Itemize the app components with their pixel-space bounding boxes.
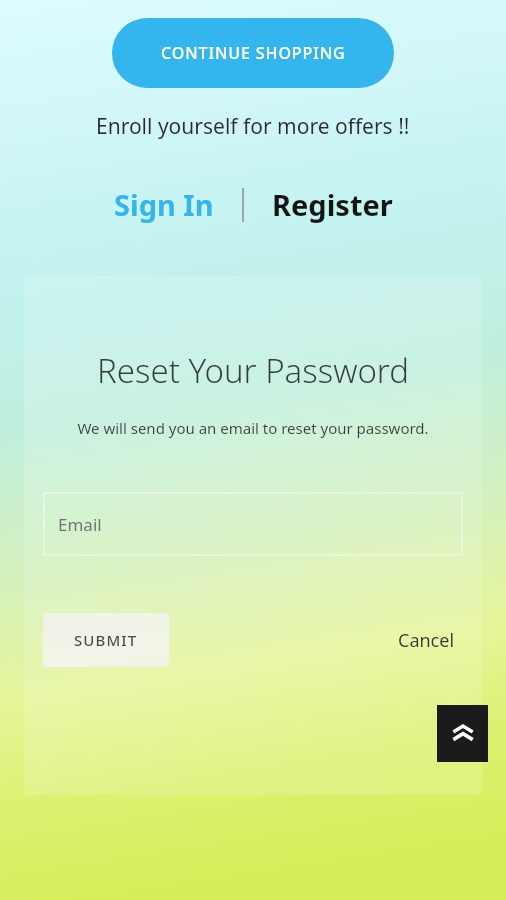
staticText: Register <box>272 185 393 224</box>
button[interactable]: Cancel <box>390 618 463 663</box>
button[interactable]: Register <box>266 181 399 228</box>
staticText: Sign In <box>114 185 214 224</box>
staticText: We will send you an email to reset your … <box>77 418 429 438</box>
staticText: Email <box>58 513 102 536</box>
button[interactable]: Sign In <box>108 181 220 228</box>
button[interactable]: Scroll to top <box>437 705 488 762</box>
staticText: CONTINUE SHOPPING <box>161 42 346 64</box>
staticText: SUBMIT <box>74 630 138 650</box>
button[interactable]: Email <box>44 493 462 555</box>
staticText: Reset Your Password <box>97 348 409 393</box>
button[interactable]: CONTINUE SHOPPING <box>112 18 394 88</box>
staticText: Cancel <box>398 628 455 653</box>
staticText: Enroll yourself for more offers !! <box>96 112 410 141</box>
button[interactable]: SUBMIT <box>43 613 169 667</box>
